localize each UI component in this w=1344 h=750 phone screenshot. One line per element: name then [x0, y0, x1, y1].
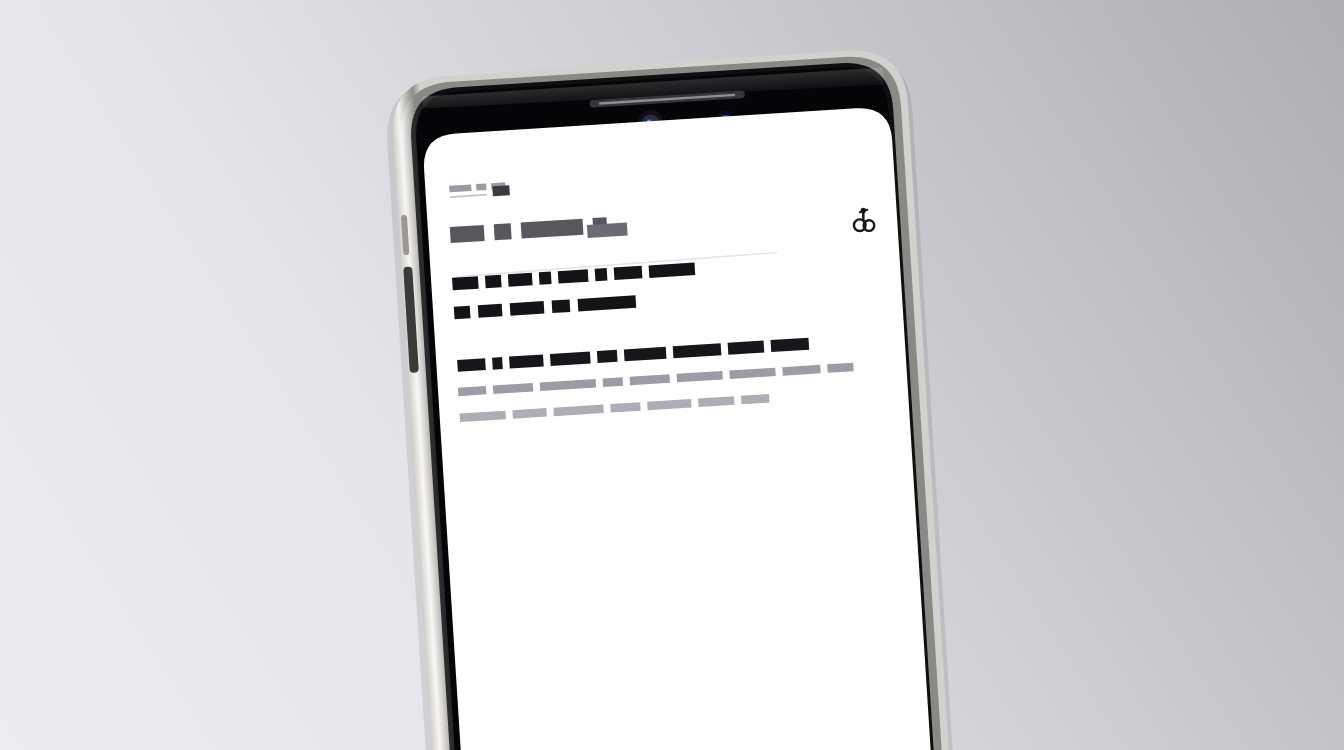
button[interactable]: Article reader screen on phone [0, 0, 1344, 750]
